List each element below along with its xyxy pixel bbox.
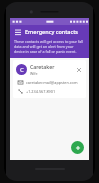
button[interactable]: C bbox=[13, 60, 86, 98]
staticText: caretaker.mail@appsten.com bbox=[26, 80, 78, 85]
staticText: Caretaker bbox=[30, 63, 55, 70]
staticText: C bbox=[20, 66, 24, 74]
button[interactable]: Add emergency contact bbox=[71, 141, 84, 154]
button[interactable]: +1.234.567.8901 bbox=[13, 88, 86, 95]
staticText: +1.234.567.8901 bbox=[26, 89, 56, 94]
staticText: Wife bbox=[30, 71, 38, 76]
button[interactable]: Open navigation menu bbox=[13, 27, 22, 36]
staticText: Emergency contacts bbox=[25, 28, 78, 35]
button[interactable]: Remove contact bbox=[74, 65, 83, 74]
staticText: These contacts will get access to your f… bbox=[14, 39, 85, 54]
button[interactable]: caretaker.mail@appsten.com bbox=[13, 79, 86, 86]
